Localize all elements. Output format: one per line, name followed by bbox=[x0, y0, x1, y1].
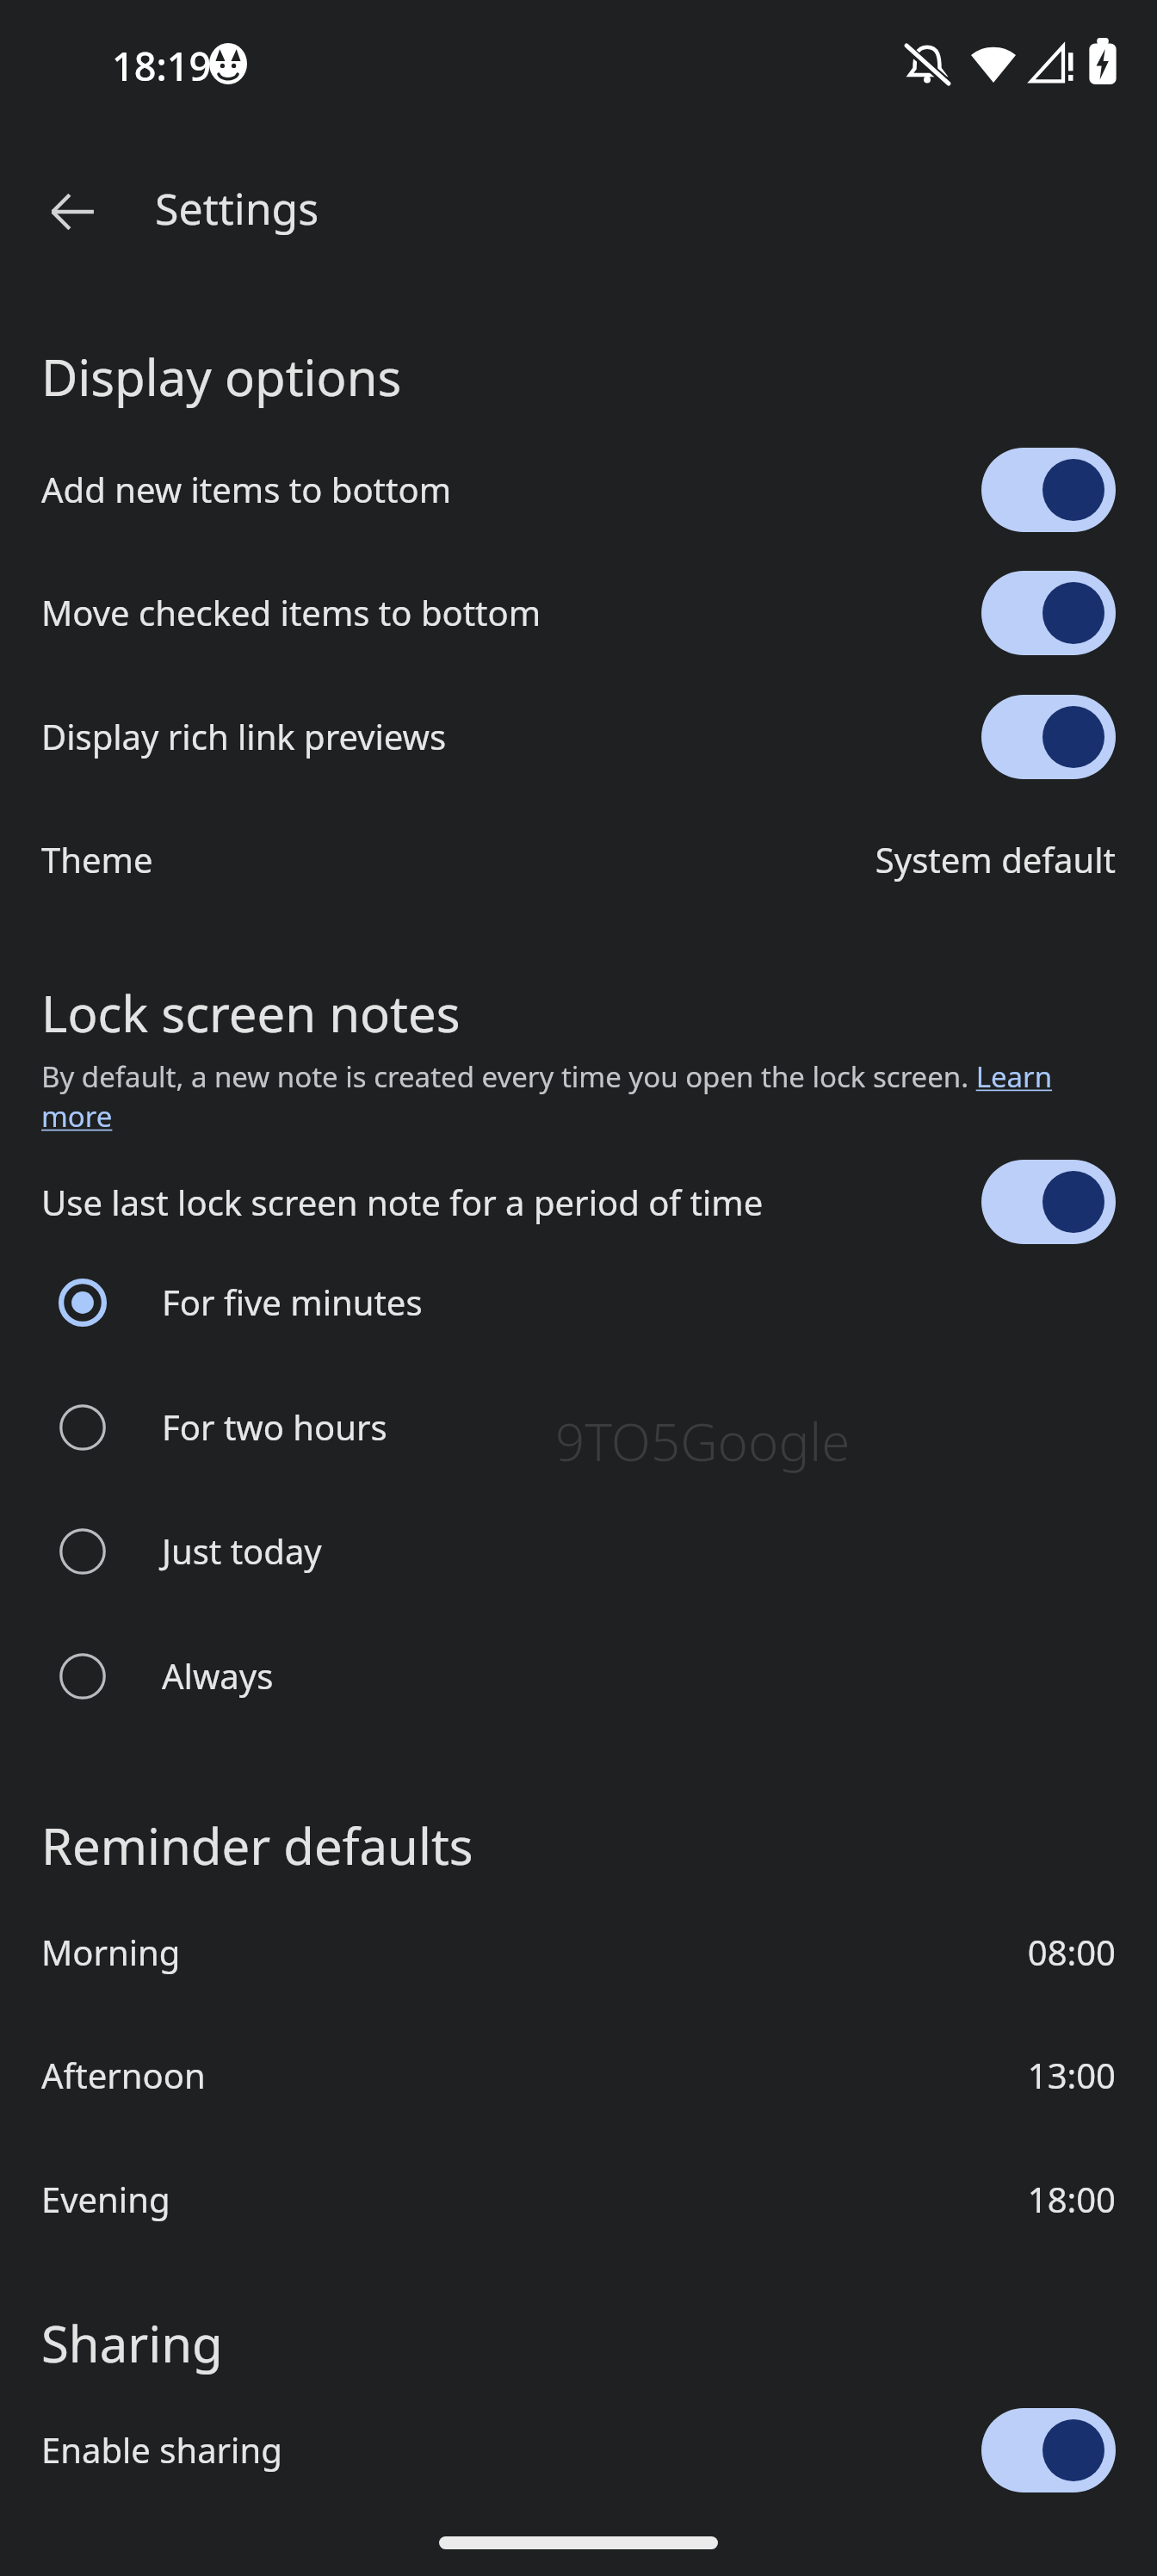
staticText: 9TO5Google bbox=[555, 1406, 851, 1477]
staticText: Theme bbox=[41, 836, 153, 882]
button[interactable]: Display rich link previews bbox=[981, 695, 1116, 779]
staticText: Afternoon bbox=[41, 2052, 206, 2098]
staticText: Settings bbox=[155, 179, 319, 238]
staticText: Add new items to bottom bbox=[41, 466, 452, 512]
staticText: System default bbox=[0, 836, 1116, 886]
button[interactable] bbox=[0, 1618, 1157, 1735]
staticText: 18:00 bbox=[0, 2176, 1116, 2226]
staticText: Morning bbox=[41, 1929, 181, 1975]
staticText: 13:00 bbox=[0, 2052, 1116, 2102]
button[interactable] bbox=[0, 430, 1157, 549]
staticText: Reminder defaults bbox=[41, 1811, 473, 1879]
staticText: 18:19 bbox=[112, 40, 212, 92]
staticText: By default, a new note is created every … bbox=[41, 1057, 1119, 1136]
staticText: Enable sharing bbox=[41, 2426, 282, 2473]
button[interactable] bbox=[0, 2391, 1157, 2510]
staticText: Always bbox=[162, 1652, 274, 1699]
staticText: Evening bbox=[41, 2176, 170, 2222]
button[interactable]: By default, a new note is created every … bbox=[41, 1057, 1119, 1154]
button[interactable]: Move checked items to bottom bbox=[981, 571, 1116, 655]
button[interactable] bbox=[0, 1369, 1157, 1486]
button[interactable] bbox=[0, 2022, 1157, 2131]
staticText: Sharing bbox=[41, 2309, 223, 2377]
button[interactable] bbox=[0, 807, 1157, 915]
staticText: Just today bbox=[162, 1527, 322, 1574]
button[interactable] bbox=[0, 678, 1157, 796]
button[interactable]: Enable sharing bbox=[981, 2408, 1116, 2492]
button[interactable]: Add new items to bottom bbox=[981, 448, 1116, 532]
button[interactable] bbox=[0, 1493, 1157, 1610]
staticText: Display rich link previews bbox=[41, 713, 447, 759]
button[interactable]: Use last lock screen note for a period o… bbox=[981, 1160, 1116, 1244]
button[interactable]: Back bbox=[29, 169, 115, 255]
staticText: 08:00 bbox=[0, 1929, 1116, 1978]
button[interactable] bbox=[0, 1244, 1157, 1361]
button[interactable] bbox=[0, 1142, 1157, 1261]
button[interactable] bbox=[0, 2146, 1157, 2255]
button[interactable] bbox=[0, 554, 1157, 672]
staticText: Display options bbox=[41, 343, 402, 411]
staticText: For two hours bbox=[162, 1403, 387, 1450]
staticText: Move checked items to bottom bbox=[41, 589, 541, 635]
button[interactable] bbox=[0, 1899, 1157, 2008]
staticText: For five minutes bbox=[162, 1279, 423, 1325]
staticText: Lock screen notes bbox=[41, 979, 461, 1047]
staticText: Use last lock screen note for a period o… bbox=[41, 1179, 764, 1225]
